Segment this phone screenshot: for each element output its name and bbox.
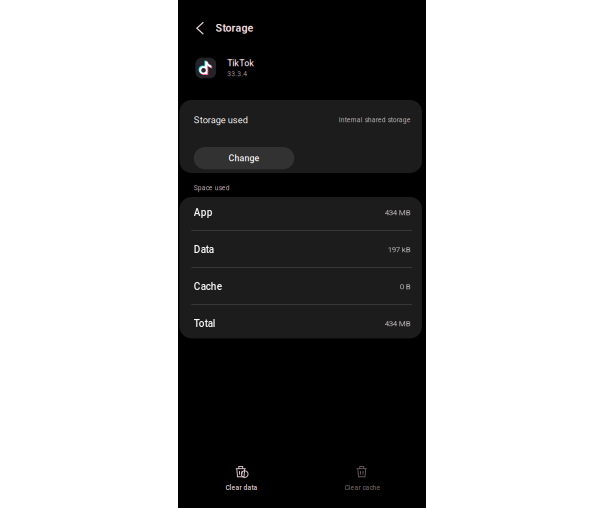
staticText: App: [194, 207, 213, 218]
button[interactable]: Cache: [179, 268, 422, 304]
staticText: Internal shared storage: [339, 116, 411, 124]
button[interactable]: Change: [194, 147, 294, 169]
staticText: Clear cache: [344, 484, 380, 492]
staticText: 33.3.4: [227, 70, 247, 78]
staticText: Data: [194, 244, 214, 255]
staticText: Total: [194, 318, 216, 329]
button[interactable]: Clear cache: [302, 455, 422, 508]
staticText: TikTok: [227, 58, 254, 68]
staticText: Clear data: [225, 484, 257, 492]
staticText: Storage used: [194, 114, 248, 125]
button[interactable]: Clear data: [181, 455, 301, 508]
staticText: 197 kB: [388, 245, 411, 254]
staticText: 434 MB: [385, 319, 411, 328]
button[interactable]: App: [179, 194, 422, 230]
staticText: Storage: [216, 22, 254, 34]
button[interactable]: Data: [179, 231, 422, 267]
staticText: Cache: [194, 281, 222, 292]
staticText: Space used: [194, 184, 230, 192]
staticText: 434 MB: [385, 208, 411, 217]
button[interactable]: Total: [179, 305, 422, 341]
staticText: Change: [229, 153, 260, 163]
staticText: 0 B: [400, 282, 411, 291]
button[interactable]: Back: [185, 8, 216, 48]
